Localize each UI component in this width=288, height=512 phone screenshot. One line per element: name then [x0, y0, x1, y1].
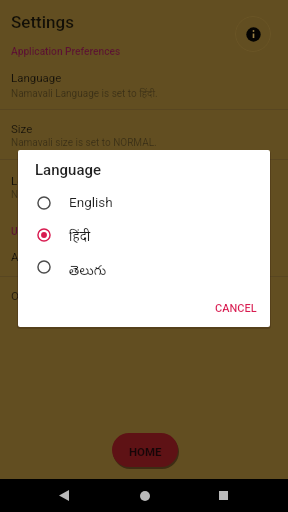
button[interactable]: हिंदी — [18, 219, 270, 251]
staticText: Application Preferences — [11, 46, 121, 58]
staticText: తెలుగు — [69, 263, 107, 281]
staticText: English — [69, 194, 113, 210]
button[interactable] — [0, 113, 288, 157]
staticText: Namavali Length is set to 108. — [11, 189, 146, 201]
button[interactable]: తెలుగు — [18, 251, 270, 283]
button[interactable]: HOME — [112, 433, 178, 467]
staticText: Length — [11, 174, 47, 187]
button[interactable] — [0, 62, 288, 106]
staticText: Language — [11, 71, 62, 84]
button[interactable] — [0, 241, 288, 285]
staticText: Offline Mode — [11, 289, 77, 302]
staticText: Language — [35, 161, 102, 179]
button[interactable]: Information — [235, 16, 271, 52]
button[interactable]: Recent apps — [207, 479, 239, 512]
staticText: User Preferences — [11, 226, 90, 238]
staticText: हिंदी — [69, 227, 91, 245]
staticText: CANCEL — [215, 302, 257, 315]
staticText: Size — [11, 122, 33, 135]
staticText: HOME — [129, 445, 162, 458]
button[interactable]: English — [18, 187, 270, 219]
staticText: Namavali Language is set to हिंदी. — [11, 86, 158, 100]
button[interactable]: Back — [48, 479, 80, 512]
staticText: Namavali size is set to NORMAL. — [11, 137, 157, 149]
button[interactable]: Home — [129, 479, 161, 512]
button[interactable] — [0, 165, 288, 209]
staticText: Settings — [11, 12, 74, 32]
button[interactable] — [0, 280, 288, 324]
button[interactable]: CANCEL — [208, 296, 264, 321]
staticText: Account — [11, 250, 54, 263]
